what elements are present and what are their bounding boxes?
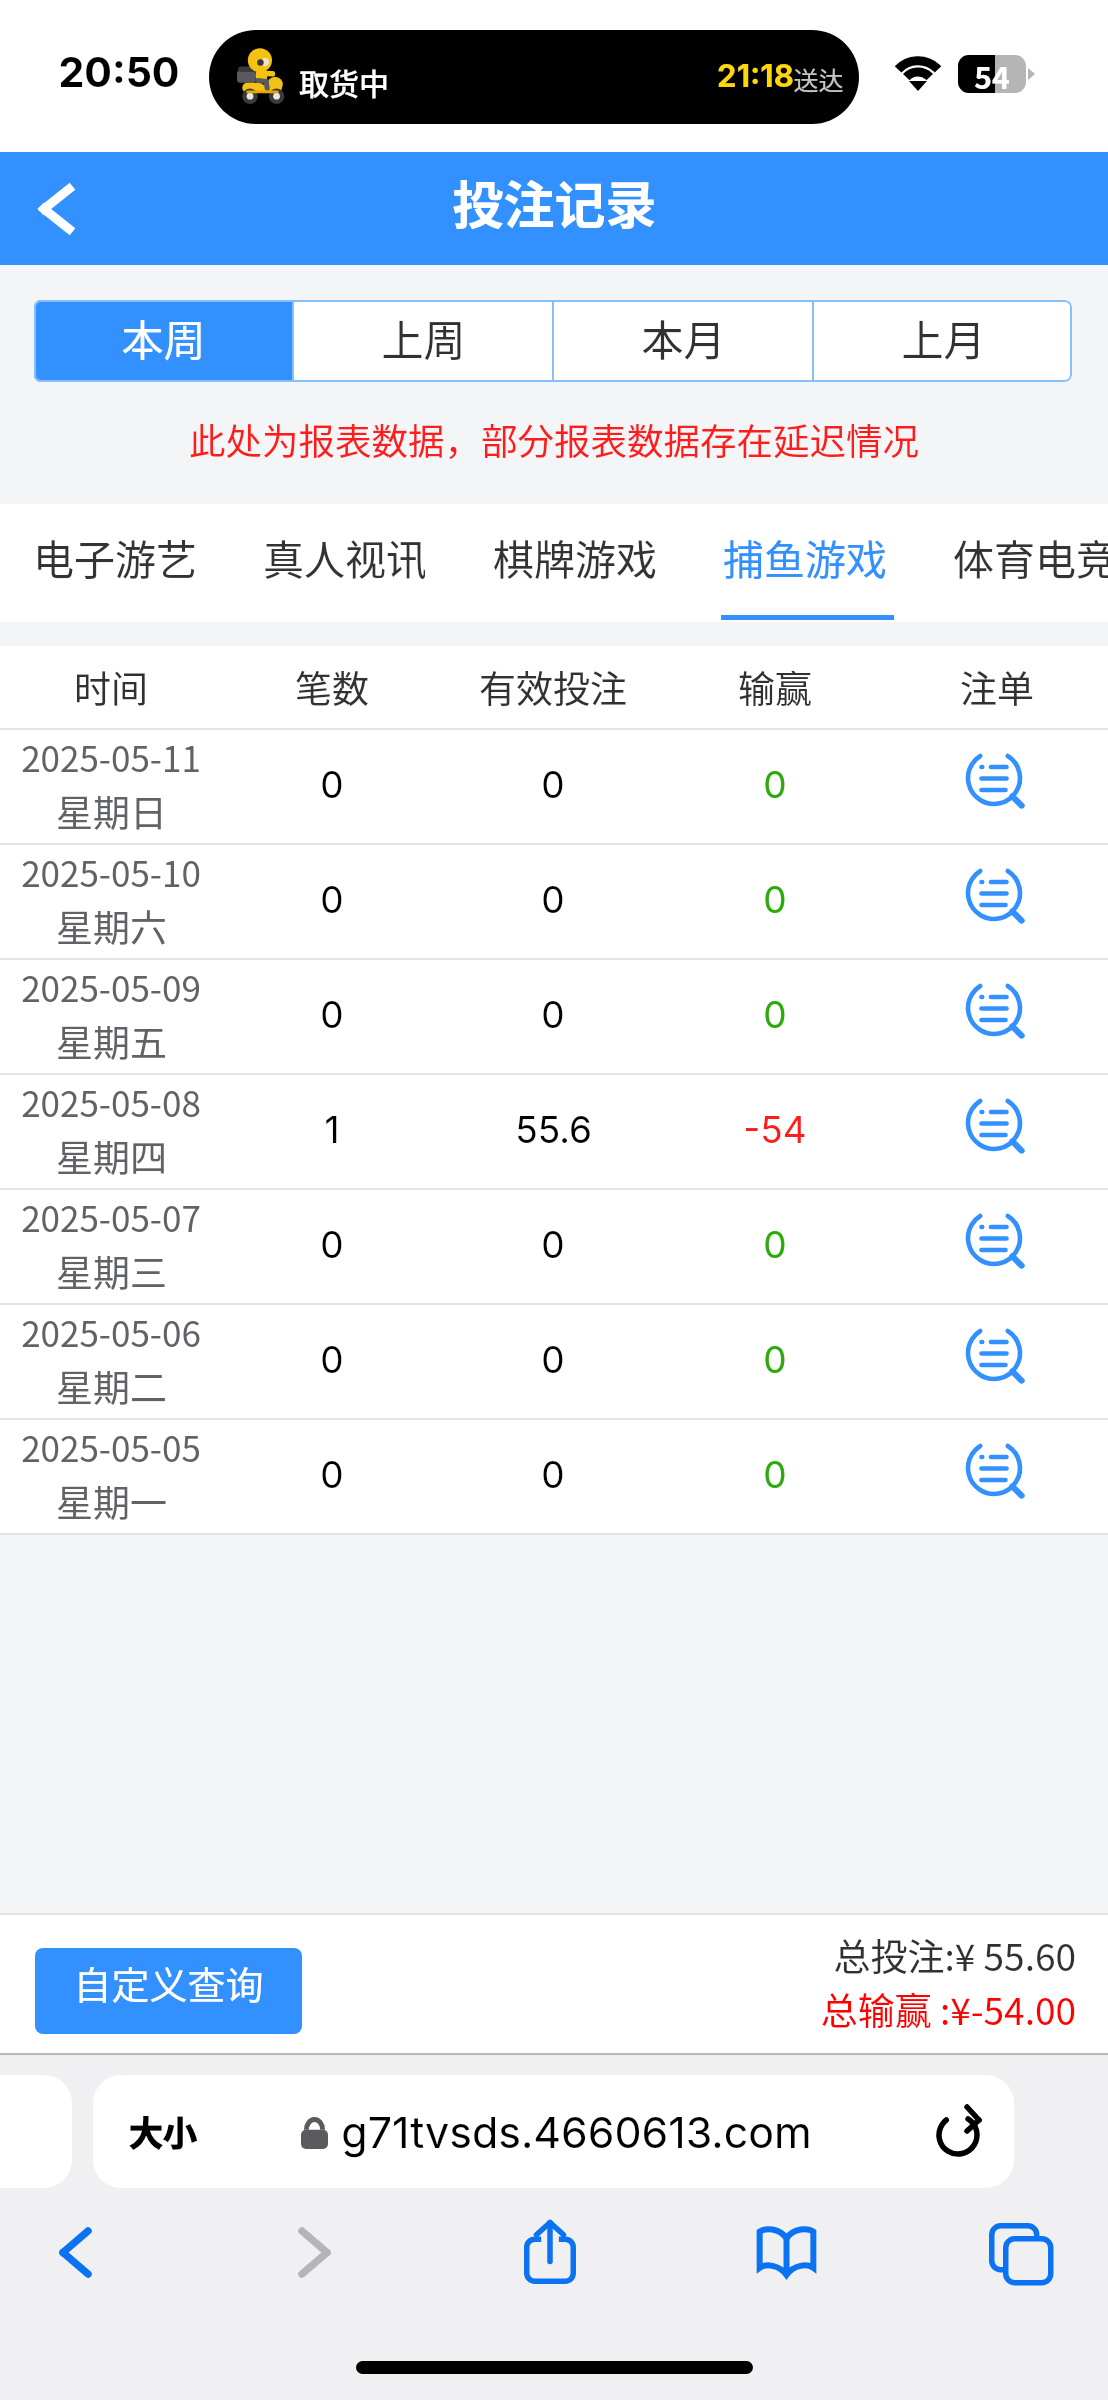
button[interactable]: 0: [442, 845, 664, 960]
staticText: 2025-05-07: [21, 1191, 201, 1242]
button[interactable]: 2025-05-08: [0, 1075, 221, 1190]
button[interactable]: 2025-05-11: [0, 730, 221, 845]
staticText: 大小: [129, 2107, 197, 2156]
button[interactable]: 查看注单: [886, 845, 1108, 960]
button[interactable]: 2025-05-10: [0, 845, 221, 960]
staticText: 0: [320, 1452, 344, 1497]
button[interactable]: 0: [221, 1305, 442, 1420]
button[interactable]: 本月: [554, 300, 812, 382]
staticText: 0: [541, 877, 565, 922]
button[interactable]: 查看注单: [886, 1305, 1108, 1420]
staticText: 捕鱼游戏: [723, 527, 885, 586]
staticText: 0: [763, 1452, 787, 1497]
staticText: 0: [320, 1337, 344, 1382]
staticText: 2025-05-10: [21, 846, 201, 897]
staticText: 0: [541, 1452, 565, 1497]
button[interactable]: 0: [221, 845, 442, 960]
staticText: 时间: [74, 660, 148, 714]
staticText: 55.6: [515, 1107, 592, 1152]
button[interactable]: 真人视讯: [263, 504, 425, 622]
button[interactable]: 0: [664, 1305, 886, 1420]
staticText: 0: [541, 992, 565, 1037]
button[interactable]: 查看注单: [886, 730, 1108, 845]
staticText: 2025-05-08: [21, 1076, 201, 1127]
staticText: 本月: [641, 307, 726, 368]
staticText: 20:50: [58, 47, 180, 97]
button[interactable]: 本周: [34, 300, 292, 382]
button[interactable]: 体育电竞: [953, 504, 1108, 622]
staticText: 总投注:¥ 55.60: [833, 1928, 1076, 1982]
staticText: 此处为报表数据，部分报表数据存在延迟情况: [189, 413, 919, 466]
staticText: 本周: [121, 307, 206, 368]
staticText: 星期六: [56, 899, 167, 953]
button[interactable]: Bookmarks: [726, 2192, 846, 2312]
button[interactable]: 查看注单: [886, 1420, 1108, 1535]
staticText: g71tvsds.4660613.com: [341, 2106, 812, 2158]
staticText: 0: [763, 1337, 787, 1382]
button[interactable]: Tabs: [959, 2192, 1079, 2312]
button[interactable]: 0: [221, 1190, 442, 1305]
staticText: 0: [763, 762, 787, 807]
button[interactable]: 0: [442, 1305, 664, 1420]
staticText: 总输赢 :¥-54.00: [820, 1982, 1076, 2036]
staticText: 电子游艺: [33, 527, 195, 586]
staticText: 星期日: [56, 784, 167, 838]
staticText: 0: [320, 992, 344, 1037]
button[interactable]: 0: [442, 1190, 664, 1305]
button[interactable]: Back: [0, 152, 112, 265]
staticText: 0: [320, 1222, 344, 1267]
staticText: 投注记录: [452, 165, 657, 239]
staticText: 笔数: [295, 660, 369, 714]
button[interactable]: 0: [664, 960, 886, 1075]
button[interactable]: 0: [221, 730, 442, 845]
button[interactable]: 1: [221, 1075, 442, 1190]
staticText: 体育电竞: [953, 527, 1108, 586]
staticText: 星期五: [56, 1014, 167, 1068]
staticText: 0: [541, 762, 565, 807]
button[interactable]: 0: [442, 1420, 664, 1535]
staticText: 取货中: [299, 60, 389, 103]
button[interactable]: 查看注单: [886, 1075, 1108, 1190]
staticText: 2025-05-06: [21, 1306, 201, 1357]
staticText: 上月: [901, 307, 986, 368]
button[interactable]: 2025-05-09: [0, 960, 221, 1075]
button[interactable]: 上月: [814, 300, 1072, 382]
staticText: 0: [763, 992, 787, 1037]
button[interactable]: 0: [221, 960, 442, 1075]
button[interactable]: Live activity: [209, 30, 859, 124]
button[interactable]: 自定义查询: [35, 1948, 302, 2034]
button[interactable]: 电子游艺: [33, 504, 195, 622]
button[interactable]: 0: [442, 960, 664, 1075]
button[interactable]: Share: [490, 2192, 610, 2312]
button[interactable]: 0: [221, 1420, 442, 1535]
button[interactable]: 捕鱼游戏: [723, 504, 885, 622]
staticText: 有效投注: [479, 660, 627, 714]
button[interactable]: -54: [664, 1075, 886, 1190]
button[interactable]: 2025-05-06: [0, 1305, 221, 1420]
button[interactable]: 2025-05-07: [0, 1190, 221, 1305]
staticText: 星期三: [56, 1244, 167, 1298]
button[interactable]: Forward: [254, 2192, 374, 2312]
button[interactable]: 大小: [93, 2075, 1014, 2188]
button[interactable]: 查看注单: [886, 960, 1108, 1075]
staticText: 0: [541, 1337, 565, 1382]
button[interactable]: 0: [442, 730, 664, 845]
staticText: 输赢: [738, 660, 812, 714]
button[interactable]: Back: [15, 2192, 135, 2312]
button[interactable]: Reload: [904, 2075, 1014, 2188]
button[interactable]: 2025-05-05: [0, 1420, 221, 1535]
button[interactable]: 55.6: [442, 1075, 664, 1190]
button[interactable]: 0: [664, 845, 886, 960]
button[interactable]: 0: [664, 1190, 886, 1305]
button[interactable]: 0: [664, 730, 886, 845]
staticText: 星期二: [56, 1359, 167, 1413]
button[interactable]: 棋牌游戏: [493, 504, 655, 622]
staticText: 0: [763, 877, 787, 922]
staticText: 星期一: [56, 1474, 167, 1528]
button[interactable]: 0: [664, 1420, 886, 1535]
staticText: 2025-05-11: [21, 731, 201, 782]
staticText: 21:18: [717, 57, 794, 95]
button[interactable]: 上周: [294, 300, 552, 382]
button[interactable]: 查看注单: [886, 1190, 1108, 1305]
